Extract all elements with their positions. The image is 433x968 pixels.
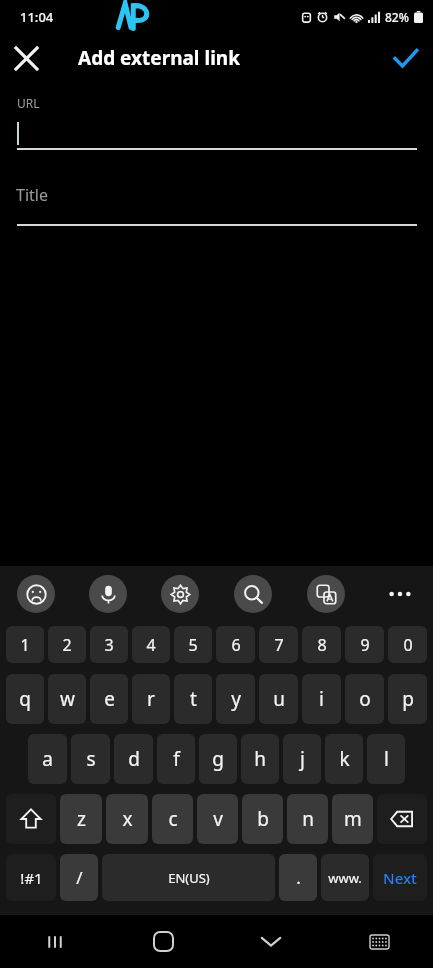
button[interactable]: Backspace [377,794,427,844]
staticText: v [213,806,223,832]
button[interactable]: / [60,854,98,901]
button[interactable]: Settings [161,575,199,613]
staticText: z [77,806,86,832]
staticText: 11:04 [20,8,54,26]
button[interactable]: t [174,674,212,724]
button[interactable]: o [345,674,384,724]
staticText: 5 [188,634,198,656]
button[interactable]: m [332,794,373,844]
button[interactable]: Title [0,180,433,210]
button[interactable]: 1 [6,626,44,663]
staticText: URL [17,95,40,111]
button[interactable]: 9 [345,626,384,663]
button[interactable]: w [48,674,86,724]
button[interactable]: r [132,674,170,724]
staticText: 1 [20,634,30,656]
button[interactable]: l [367,734,405,784]
staticText: h [254,746,266,772]
staticText: 6 [231,634,241,656]
button[interactable]: f [157,734,195,784]
staticText: 4 [146,634,156,656]
staticText: 9 [360,634,370,656]
button[interactable]: x [106,794,148,844]
button[interactable]: More options [380,574,420,614]
staticText: j [300,746,305,772]
staticText: p [402,686,414,712]
staticText: Next [383,868,417,888]
button[interactable]: i [302,674,341,724]
button[interactable]: c [152,794,193,844]
staticText: Title [16,184,48,206]
staticText: www. [328,869,362,887]
button[interactable]: 0 [388,626,427,663]
staticText: 3 [104,634,114,656]
staticText: d [128,746,140,772]
button[interactable]: y [216,674,255,724]
staticText: e [104,686,115,712]
button[interactable]: !#1 [6,854,56,901]
staticText: a [42,746,53,772]
button[interactable]: Switch keyboard [325,915,433,968]
button[interactable]: Voice input [89,575,127,613]
button[interactable]: n [287,794,328,844]
button[interactable]: www. [321,854,369,901]
staticText: 0 [403,634,413,656]
staticText: x [122,806,133,832]
staticText: b [257,806,269,832]
button[interactable]: b [242,794,283,844]
button[interactable]: q [6,674,44,724]
button[interactable]: h [241,734,279,784]
staticText: y [231,686,241,712]
button[interactable]: Translate [307,575,345,613]
button[interactable]: 2 [48,626,86,663]
button[interactable]: Recents [0,915,109,968]
staticText: s [86,746,96,772]
staticText: o [359,686,371,712]
staticText: 82% [385,9,409,25]
button[interactable]: z [60,794,102,844]
staticText: w [60,686,75,712]
staticText: Add external link [78,45,240,71]
staticText: . [296,866,301,889]
staticText: !#1 [20,868,43,888]
staticText: / [76,866,83,889]
button[interactable]: Hide keyboard [217,915,325,968]
button[interactable]: k [325,734,363,784]
button[interactable]: d [114,734,153,784]
button[interactable]: v [197,794,238,844]
button[interactable]: a [28,734,67,784]
button[interactable]: Emoji [17,575,55,613]
staticText: f [173,746,180,772]
button[interactable]: EN(US) [102,854,275,901]
staticText: c [168,806,178,832]
button[interactable]: Shift [6,794,56,844]
button[interactable]: Search [234,575,272,613]
button[interactable]: p [388,674,427,724]
button[interactable]: Confirm [377,33,433,83]
staticText: i [319,686,324,712]
button[interactable]: 6 [216,626,255,663]
staticText: k [339,746,350,772]
staticText: n [302,806,314,832]
staticText: 7 [274,634,284,656]
button[interactable]: 3 [90,626,128,663]
staticText: 2 [62,634,72,656]
button[interactable] [0,119,433,148]
button[interactable]: s [71,734,110,784]
button[interactable]: 5 [174,626,212,663]
button[interactable]: Close [0,33,52,83]
button[interactable]: 7 [259,626,298,663]
button[interactable]: . [279,854,317,901]
button[interactable]: j [283,734,321,784]
button[interactable]: Next [373,854,427,901]
button[interactable]: 8 [302,626,341,663]
staticText: q [19,686,31,712]
button[interactable]: 4 [132,626,170,663]
button[interactable]: Home [109,915,217,968]
button[interactable]: g [199,734,237,784]
staticText: 8 [317,634,327,656]
staticText: m [344,806,362,832]
button[interactable]: e [90,674,128,724]
button[interactable]: u [259,674,298,724]
staticText: r [147,686,155,712]
